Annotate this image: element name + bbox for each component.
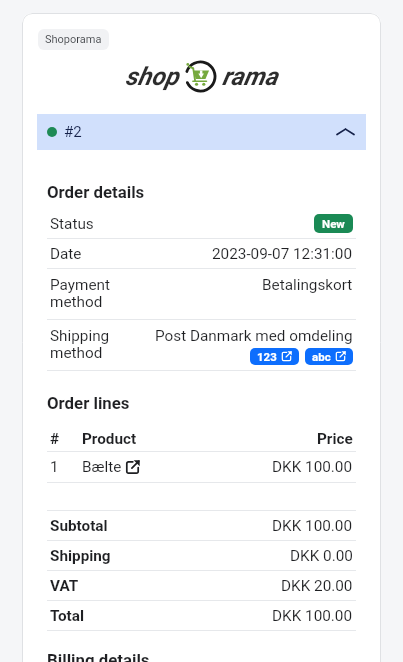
staticText: VAT	[50, 577, 79, 595]
staticText: Order lines	[47, 393, 130, 413]
staticText: New	[322, 217, 345, 230]
staticText: DKK 100.00	[272, 517, 353, 535]
button[interactable]: #2	[37, 114, 366, 150]
staticText: Order details	[47, 182, 145, 202]
staticText: rama	[222, 62, 278, 91]
staticText: Payment method	[50, 276, 110, 311]
button[interactable]: abc	[305, 348, 353, 365]
staticText: Shoporama	[45, 33, 102, 46]
staticText: Shipping method	[50, 327, 110, 362]
staticText: #	[50, 430, 60, 448]
staticText: Subtotal	[50, 517, 108, 535]
staticText: shop	[125, 62, 179, 91]
staticText: Price	[317, 430, 353, 448]
staticText: DKK 20.00	[281, 577, 353, 595]
staticText: Status	[50, 215, 94, 233]
staticText: 123	[257, 350, 277, 363]
staticText: Post Danmark med omdeling	[155, 327, 353, 345]
staticText: Date	[50, 245, 82, 263]
button[interactable]: Collapse order #2	[334, 121, 356, 143]
staticText: Betalingskort	[262, 276, 353, 294]
staticText: Shipping	[50, 547, 111, 565]
staticText: DKK 100.00	[272, 607, 353, 625]
staticText: Billing details	[47, 650, 150, 662]
staticText: DKK 0.00	[290, 547, 353, 565]
staticText: Total	[50, 607, 84, 625]
staticText: Bælte	[82, 458, 122, 476]
staticText: DKK 100.00	[272, 458, 353, 476]
button[interactable]: 123	[250, 348, 299, 365]
staticText: Product	[82, 430, 137, 448]
staticText: #2	[64, 123, 82, 141]
button[interactable]: Bælte	[82, 458, 140, 476]
staticText: 2023-09-07 12:31:00	[212, 245, 353, 263]
staticText: abc	[312, 350, 331, 363]
staticText: 1	[50, 458, 59, 476]
button[interactable]: Shoporama	[38, 29, 109, 50]
